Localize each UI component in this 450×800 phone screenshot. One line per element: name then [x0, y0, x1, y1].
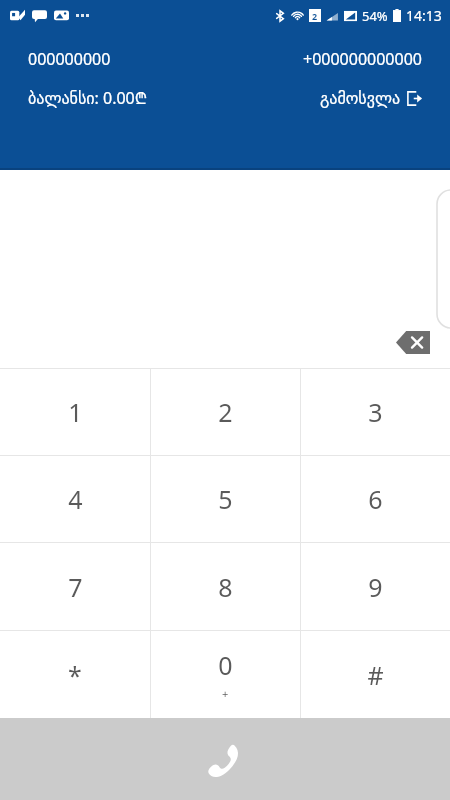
staticText: + [222, 686, 229, 701]
button[interactable]: 9 [301, 543, 450, 630]
staticText: 1 [68, 395, 83, 429]
staticText: ბალანსი: 0.00₾ [28, 87, 148, 109]
button[interactable]: 6 [301, 456, 450, 542]
staticText: 4 [68, 482, 83, 516]
staticText: 5 [218, 482, 233, 516]
button[interactable]: 7 [0, 543, 150, 630]
other: Logout [407, 91, 422, 106]
staticText: * [68, 658, 82, 692]
button[interactable]: * [0, 631, 150, 718]
button[interactable]: გამოსვლა [320, 89, 422, 108]
button[interactable]: 8 [151, 543, 300, 630]
button[interactable]: 1 [0, 369, 150, 455]
staticText: 54% [362, 7, 388, 25]
staticText: 2 [312, 10, 318, 22]
staticText: 9 [368, 570, 383, 604]
staticText: 8 [218, 570, 233, 604]
button[interactable]: 5 [151, 456, 300, 542]
button[interactable]: Call [0, 718, 450, 800]
staticText: 2 [218, 395, 233, 429]
staticText: 14:13 [406, 6, 442, 25]
button[interactable]: 4 [0, 456, 150, 542]
staticText: # [367, 658, 384, 692]
button[interactable]: 3 [301, 369, 450, 455]
staticText: 000000000 [28, 48, 111, 70]
button[interactable]: Backspace [396, 331, 430, 354]
staticText: გამოსვლა [320, 89, 401, 108]
staticText: 0 [218, 648, 233, 682]
button[interactable]: # [301, 631, 450, 718]
staticText: +000000000000 [303, 48, 422, 70]
staticText: 3 [368, 395, 383, 429]
staticText: 6 [368, 482, 383, 516]
button[interactable]: 2 [151, 369, 300, 455]
staticText: 7 [68, 570, 83, 604]
button[interactable]: 0 [151, 631, 300, 718]
